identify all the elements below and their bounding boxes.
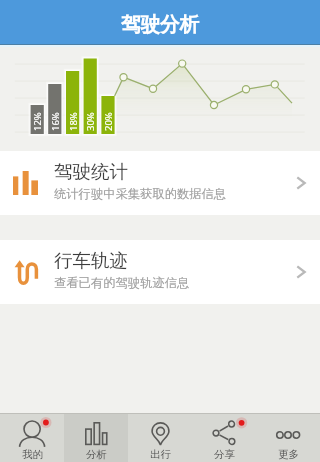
staticText: 行车轨迹: [54, 249, 128, 272]
staticText: 统计行驶中采集获取的数据信息: [54, 186, 227, 201]
button[interactable]: Analysis: [64, 414, 128, 462]
button[interactable]: 驾驶统计: [0, 151, 320, 215]
staticText: 我的: [22, 448, 43, 461]
staticText: 30%: [84, 112, 97, 131]
staticText: 查看已有的驾驶轨迹信息: [54, 275, 190, 290]
staticText: 20%: [102, 112, 115, 131]
staticText: 出行: [150, 448, 171, 461]
staticText: 12%: [31, 112, 44, 131]
staticText: 16%: [49, 112, 62, 131]
staticText: 分享: [214, 448, 235, 461]
staticText: 18%: [67, 112, 80, 131]
staticText: 更多: [278, 448, 299, 461]
button[interactable]: More: [256, 414, 320, 462]
button[interactable]: Trips: [128, 414, 192, 462]
staticText: 驾驶分析: [121, 12, 199, 37]
button[interactable]: 行车轨迹: [0, 240, 320, 304]
button[interactable]: Share: [192, 414, 256, 462]
button[interactable]: My profile: [0, 414, 64, 462]
staticText: 驾驶统计: [54, 160, 128, 183]
staticText: 分析: [86, 448, 107, 461]
